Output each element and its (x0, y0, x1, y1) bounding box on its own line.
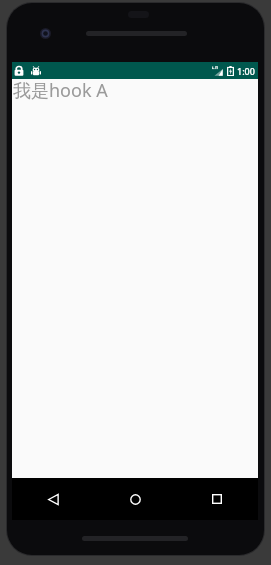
staticText: 1:00 (237, 65, 255, 77)
button[interactable]: Back (12, 478, 94, 520)
staticText: 我是hook A (13, 78, 108, 103)
button[interactable]: Home (94, 478, 176, 520)
button[interactable]: Recent apps (176, 478, 258, 520)
